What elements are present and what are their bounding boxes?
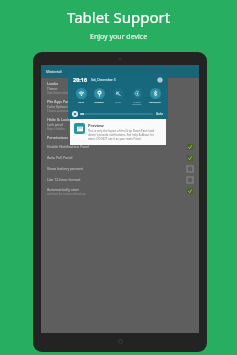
staticText: 20:16 [73, 76, 88, 83]
staticText: This is only the layout of the Drop Down… [88, 129, 162, 141]
button[interactable]: Show battery percent [41, 163, 199, 174]
staticText: and start the service at boot-up [47, 192, 86, 196]
button[interactable]: Location [90, 87, 108, 104]
staticText: Theme [47, 87, 58, 91]
staticText: Color Options [47, 105, 68, 109]
staticText: Automatically start [47, 187, 79, 192]
staticText: Tablet Support [67, 7, 171, 27]
button[interactable]: Settings [156, 76, 163, 83]
staticText: Hide & Lock [47, 117, 70, 122]
staticText: Use 12-hour format [47, 177, 187, 182]
button[interactable]: Bluetooth [146, 87, 164, 104]
button[interactable]: Lock panel [41, 122, 199, 132]
staticText: Bluetooth [149, 100, 161, 103]
staticText: Mute [115, 100, 121, 103]
staticText: Lock panel [47, 123, 63, 127]
button[interactable]: Preview [70, 119, 166, 145]
staticText: Choose accent color [47, 109, 72, 113]
button[interactable]: Theme [41, 86, 199, 96]
staticText: Wi-Fi [78, 100, 84, 103]
staticText: Screen Rotation [132, 100, 142, 106]
staticText: Preview [88, 123, 104, 128]
button[interactable]: Screen Rotation [128, 87, 146, 107]
button[interactable]: Auto Pull Panel [41, 152, 199, 163]
button[interactable]: Mute [109, 87, 127, 104]
button[interactable]: Automatically start [41, 185, 199, 197]
staticText: Enjoy your device [90, 32, 148, 42]
staticText: Looks [47, 81, 59, 86]
staticText: Enable Notification Panel [47, 144, 187, 149]
staticText: Pin App Panel [47, 99, 74, 104]
button[interactable]: Color Options [41, 104, 199, 114]
staticText: Permissions [47, 135, 69, 140]
staticText: Auto [156, 112, 164, 116]
staticText: Dark theme selected [47, 91, 73, 95]
staticText: Location [94, 100, 104, 103]
button[interactable]: Use 12-hour format [41, 174, 199, 185]
staticText: Material [46, 69, 62, 74]
staticText: Auto Pull Panel [47, 155, 187, 160]
staticText: Show battery percent [47, 166, 187, 171]
staticText: Sat, December 5 [91, 78, 116, 82]
button[interactable]: Enable Notification Panel [41, 141, 199, 152]
staticText: Keep it hidden [47, 127, 65, 131]
button[interactable]: Wi-Fi [72, 87, 90, 104]
